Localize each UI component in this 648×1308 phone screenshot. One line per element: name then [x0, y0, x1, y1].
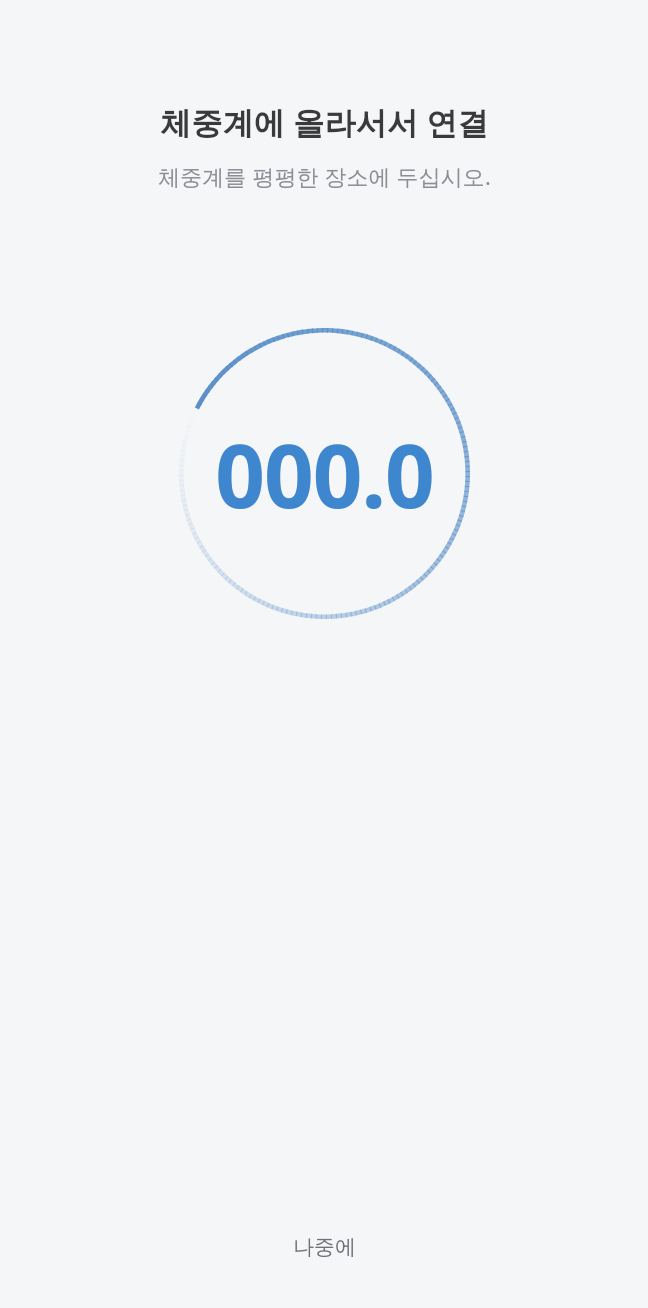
button[interactable]: 나중에 [237, 1220, 412, 1274]
staticText: 000.0 [215, 415, 434, 533]
other: Weight measurement progress [179, 328, 470, 619]
staticText: 나중에 [293, 1234, 356, 1260]
staticText: 체중계를 평평한 장소에 두십시오. [158, 161, 491, 191]
staticText: 체중계에 올라서서 연결 [160, 101, 489, 143]
